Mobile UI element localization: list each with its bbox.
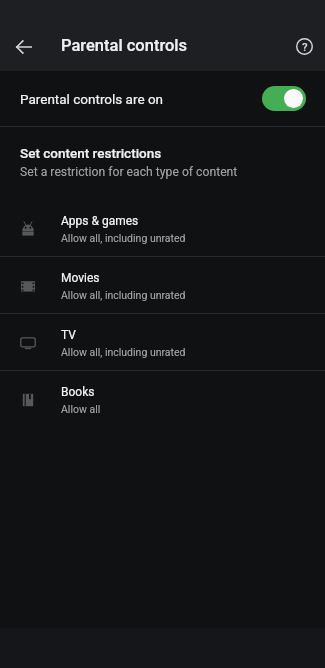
button[interactable]: Movies (0, 257, 325, 313)
staticText: Allow all, including unrated (61, 346, 186, 358)
button[interactable]: Apps & games (0, 200, 325, 256)
staticText: Allow all, including unrated (61, 232, 186, 244)
staticText: TV (61, 328, 76, 342)
staticText: Movies (61, 271, 100, 285)
staticText: Parental controls (61, 36, 188, 55)
staticText: Allow all, including unrated (61, 289, 186, 301)
button[interactable]: Parental controls are on (0, 71, 325, 126)
staticText: ? (302, 40, 308, 53)
staticText: Apps & games (61, 214, 139, 228)
staticText: Set content restrictions (20, 145, 162, 161)
button[interactable]: Back (9, 32, 38, 61)
staticText: Parental controls are on (20, 91, 164, 107)
button[interactable]: Help (290, 32, 318, 60)
button[interactable]: TV (0, 314, 325, 370)
staticText: Set a restriction for each type of conte… (20, 165, 238, 179)
button[interactable]: Books (0, 371, 325, 427)
staticText: Books (61, 385, 95, 399)
staticText: Allow all (61, 403, 101, 415)
